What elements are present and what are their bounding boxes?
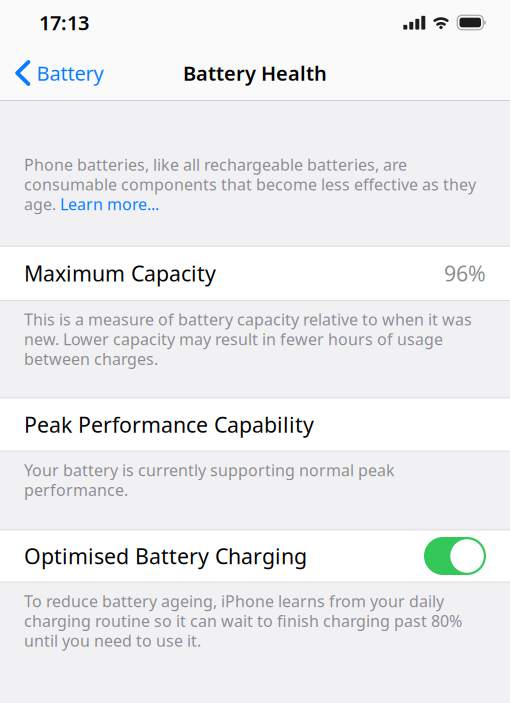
button[interactable]: Learn more... (60, 193, 159, 215)
staticText: Optimised Battery Charging (24, 542, 307, 570)
staticText: Your battery is currently supporting nor… (24, 459, 395, 481)
staticText: new. Lower capacity may result in fewer … (24, 328, 443, 350)
staticText: Battery (37, 60, 104, 86)
staticText: 17:13 (39, 9, 89, 36)
staticText: age. (24, 193, 60, 215)
button[interactable]: Optimised Battery Charging, on (424, 537, 486, 575)
staticText: Peak Performance Capability (24, 410, 314, 439)
staticText: consumable components that become less e… (24, 174, 476, 195)
staticText: until you need to use it. (24, 630, 201, 651)
staticText: Battery Health (183, 60, 327, 86)
staticText: 96% (444, 259, 486, 287)
staticText: Phone batteries, like all rechargeable b… (24, 154, 407, 175)
button[interactable]: Peak Performance Capability (0, 397, 510, 451)
staticText: To reduce battery ageing, iPhone learns … (24, 590, 444, 612)
button[interactable]: Battery (0, 45, 116, 101)
staticText: Maximum Capacity (24, 259, 216, 287)
staticText: between charges. (24, 348, 158, 369)
staticText: This is a measure of battery capacity re… (24, 309, 472, 330)
staticText: Learn more... (60, 193, 159, 215)
button[interactable]: Maximum Capacity (0, 246, 510, 301)
staticText: performance. (24, 479, 128, 500)
staticText: charging routine so it can wait to finis… (24, 610, 462, 631)
